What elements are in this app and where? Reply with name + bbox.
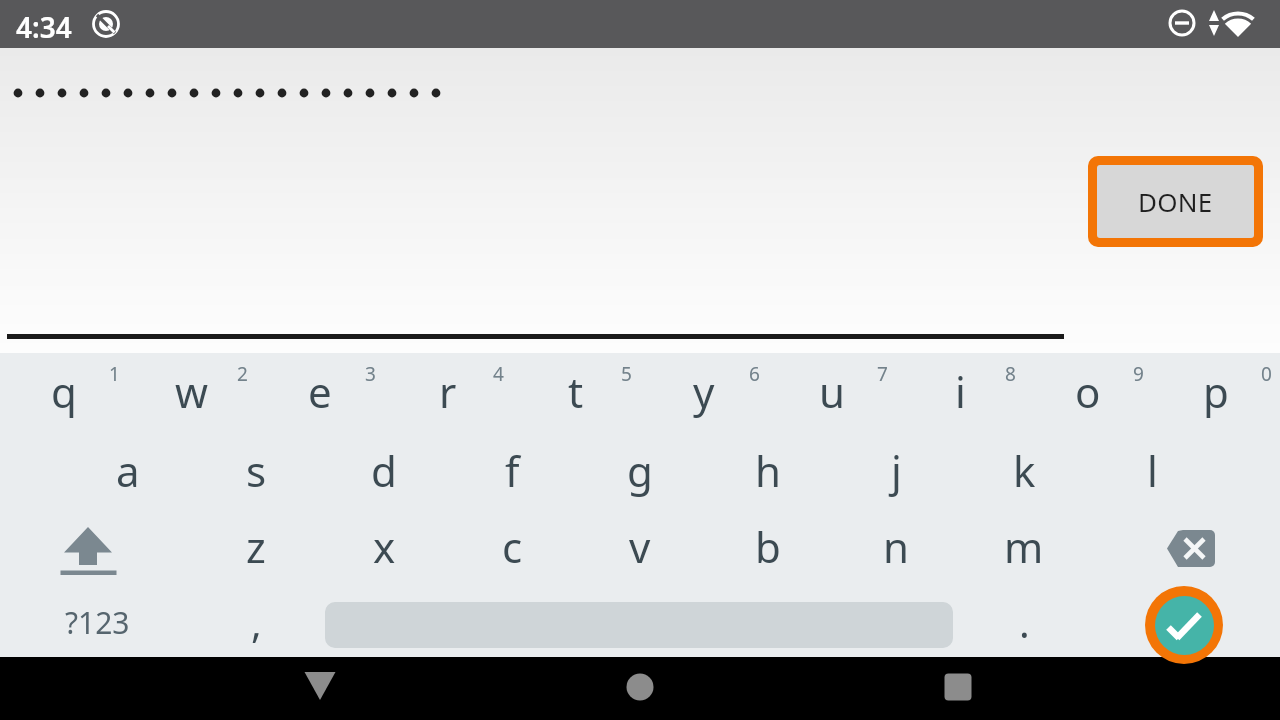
button[interactable]: f — [448, 432, 576, 508]
staticText: DONE — [1138, 184, 1213, 219]
staticText: t — [568, 363, 584, 420]
button[interactable] — [934, 663, 982, 711]
staticText: o — [1075, 363, 1101, 420]
button[interactable]: DONE — [1088, 156, 1263, 247]
staticText: x — [373, 518, 396, 575]
staticText: ?123 — [65, 602, 130, 643]
staticText: 1 — [109, 361, 120, 387]
button[interactable]: c — [448, 508, 576, 584]
button[interactable]: a — [64, 432, 192, 508]
button[interactable]: . — [960, 587, 1088, 657]
staticText: 9 — [1133, 361, 1144, 387]
staticText: z — [246, 518, 266, 575]
staticText: 3 — [365, 361, 376, 387]
staticText: q — [51, 363, 77, 420]
button[interactable]: w — [128, 353, 256, 429]
staticText: i — [955, 363, 966, 420]
button[interactable]: q — [0, 353, 128, 429]
staticText: a — [116, 442, 140, 499]
staticText: 2 — [237, 361, 248, 387]
button[interactable]: o — [1024, 353, 1152, 429]
staticText: n — [883, 518, 909, 575]
staticText: 6 — [749, 361, 760, 387]
staticText: b — [755, 518, 781, 575]
staticText: p — [1203, 363, 1229, 420]
button[interactable]: ?123 — [33, 587, 161, 657]
staticText: m — [1004, 518, 1044, 575]
staticText: d — [371, 442, 397, 499]
button[interactable]: s — [192, 432, 320, 508]
staticText: g — [627, 442, 653, 499]
button[interactable]: x — [320, 508, 448, 584]
button[interactable] — [296, 665, 344, 713]
staticText: 8 — [1005, 361, 1016, 387]
button[interactable]: n — [832, 508, 960, 584]
staticText: 4 — [493, 361, 504, 387]
button[interactable]: b — [704, 508, 832, 584]
staticText: h — [755, 442, 781, 499]
button[interactable] — [1127, 510, 1255, 586]
staticText: , — [251, 595, 262, 649]
staticText: u — [819, 363, 845, 420]
staticText: 4:34 — [16, 8, 72, 40]
button[interactable]: k — [960, 432, 1088, 508]
button[interactable]: l — [1088, 432, 1216, 508]
staticText: c — [502, 518, 523, 575]
staticText: l — [1147, 442, 1158, 499]
button[interactable]: e — [256, 353, 384, 429]
button[interactable]: y — [640, 353, 768, 429]
staticText: . — [1019, 595, 1030, 649]
staticText: k — [1013, 442, 1036, 499]
staticText: v — [629, 518, 651, 575]
button[interactable]: d — [320, 432, 448, 508]
staticText: y — [693, 363, 715, 420]
button[interactable]: h — [704, 432, 832, 508]
staticText: j — [891, 442, 902, 499]
button[interactable]: z — [192, 508, 320, 584]
button[interactable]: p — [1152, 353, 1280, 429]
button[interactable]: g — [576, 432, 704, 508]
staticText: e — [308, 363, 332, 420]
button[interactable]: r — [384, 353, 512, 429]
button[interactable]: t — [512, 353, 640, 429]
button[interactable]: m — [960, 508, 1088, 584]
button[interactable] — [1145, 586, 1223, 664]
staticText: s — [246, 442, 267, 499]
button[interactable]: j — [832, 432, 960, 508]
staticText: 0 — [1261, 361, 1272, 387]
button[interactable] — [616, 663, 664, 711]
staticText: r — [439, 363, 457, 420]
staticText: f — [505, 442, 520, 499]
button[interactable]: , — [192, 587, 320, 657]
staticText: 5 — [621, 361, 632, 387]
staticText: w — [175, 363, 209, 420]
button[interactable]: v — [576, 508, 704, 584]
staticText: 7 — [877, 361, 888, 387]
button[interactable]: u — [768, 353, 896, 429]
button[interactable] — [26, 510, 154, 586]
button[interactable]: i — [896, 353, 1024, 429]
